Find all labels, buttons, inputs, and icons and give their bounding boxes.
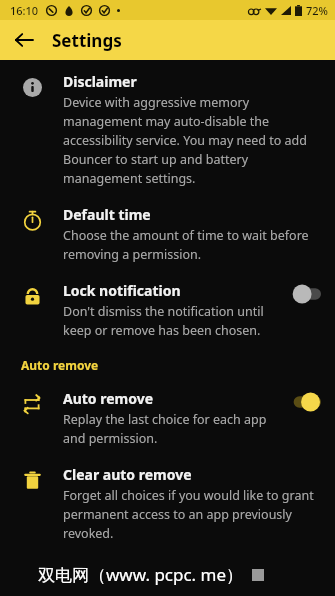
- staticText: Don't dismiss the notification until kee…: [63, 303, 277, 339]
- button[interactable]: Default time: [0, 203, 335, 265]
- button[interactable]: Disclaimer: [0, 70, 335, 189]
- staticText: Auto remove: [63, 389, 154, 408]
- button[interactable]: Toggle off: [283, 283, 321, 305]
- button[interactable]: Clear auto remove: [0, 463, 335, 544]
- button[interactable]: Lock notification: [0, 279, 335, 341]
- button[interactable]: Auto remove: [0, 387, 335, 449]
- staticText: Disclaimer: [63, 72, 137, 91]
- button[interactable]: Toggle on: [283, 391, 321, 413]
- button[interactable]: Back: [8, 24, 40, 56]
- staticText: 16:10: [10, 3, 39, 18]
- staticText: 72%: [306, 3, 328, 18]
- staticText: Replay the last choice for each app and …: [63, 411, 277, 447]
- staticText: Settings: [52, 29, 122, 52]
- staticText: Clear auto remove: [63, 465, 192, 484]
- staticText: Auto remove: [21, 357, 99, 373]
- staticText: Forget all choices if you would like to …: [63, 487, 321, 542]
- staticText: Device with aggressive memory management…: [63, 94, 321, 187]
- staticText: Lock notification: [63, 281, 181, 300]
- staticText: 双电网（www. pcpc. me）: [38, 563, 244, 586]
- staticText: Choose the amount of time to wait before…: [63, 227, 321, 263]
- staticText: Default time: [63, 205, 151, 224]
